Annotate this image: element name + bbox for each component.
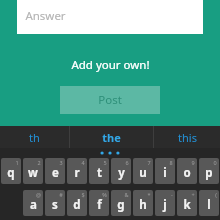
staticText: 4: [81, 159, 85, 166]
button[interactable]: +: [177, 190, 197, 216]
button[interactable]: &: [111, 190, 131, 216]
staticText: 8: [169, 159, 173, 166]
staticText: r: [74, 165, 80, 181]
button[interactable]: %: [89, 190, 109, 216]
button[interactable]: 7: [133, 158, 153, 184]
button[interactable]: 2: [23, 158, 43, 184]
staticText: +: [191, 191, 195, 198]
staticText: k: [183, 197, 191, 213]
staticText: q: [7, 165, 15, 181]
staticText: 6: [125, 159, 129, 166]
button[interactable]: 0: [199, 158, 219, 184]
staticText: %: [102, 191, 107, 198]
staticText: the: [102, 130, 121, 145]
staticText: e: [52, 165, 59, 181]
staticText: a: [30, 197, 37, 213]
staticText: this: [178, 130, 197, 145]
staticText: (: [215, 191, 217, 198]
button[interactable]: 4: [67, 158, 87, 184]
button[interactable]: this: [154, 126, 220, 148]
staticText: l: [207, 197, 211, 213]
button[interactable]: Post: [60, 86, 160, 114]
staticText: g: [117, 197, 125, 213]
staticText: u: [139, 165, 147, 181]
button[interactable]: Answer: [17, 0, 203, 34]
staticText: f: [97, 197, 102, 213]
button[interactable]: @: [23, 190, 43, 216]
staticText: p: [205, 165, 213, 181]
staticText: t: [97, 165, 102, 181]
button[interactable]: #: [45, 190, 65, 216]
staticText: 3: [59, 159, 63, 166]
staticText: i: [163, 165, 167, 181]
staticText: 5: [103, 159, 107, 166]
button[interactable]: 3: [45, 158, 65, 184]
staticText: $: [81, 191, 85, 198]
staticText: o: [183, 165, 191, 181]
staticText: &: [124, 191, 129, 198]
staticText: Add your own!: [71, 57, 150, 73]
staticText: -: [171, 191, 173, 198]
button[interactable]: 1: [1, 158, 21, 184]
staticText: #: [59, 191, 63, 198]
staticText: 2: [37, 159, 41, 166]
staticText: 9: [191, 159, 195, 166]
staticText: th: [29, 130, 40, 145]
button[interactable]: -: [155, 190, 175, 216]
staticText: Post: [98, 92, 122, 108]
staticText: 0: [213, 159, 217, 166]
staticText: 7: [147, 159, 151, 166]
button[interactable]: $: [67, 190, 87, 216]
button[interactable]: 9: [177, 158, 197, 184]
staticText: j: [163, 197, 167, 213]
button[interactable]: the: [70, 126, 153, 148]
staticText: d: [73, 197, 81, 213]
staticText: h: [139, 197, 147, 213]
staticText: w: [28, 165, 38, 181]
button[interactable]: 8: [155, 158, 175, 184]
staticText: @: [36, 191, 41, 198]
button[interactable]: th: [0, 126, 69, 148]
button[interactable]: (: [199, 190, 219, 216]
staticText: Answer: [25, 8, 66, 24]
staticText: s: [52, 197, 58, 213]
staticText: *: [147, 191, 151, 198]
button[interactable]: 6: [111, 158, 131, 184]
button[interactable]: 5: [89, 158, 109, 184]
staticText: y: [118, 165, 125, 181]
staticText: 1: [15, 159, 19, 166]
button[interactable]: *: [133, 190, 153, 216]
